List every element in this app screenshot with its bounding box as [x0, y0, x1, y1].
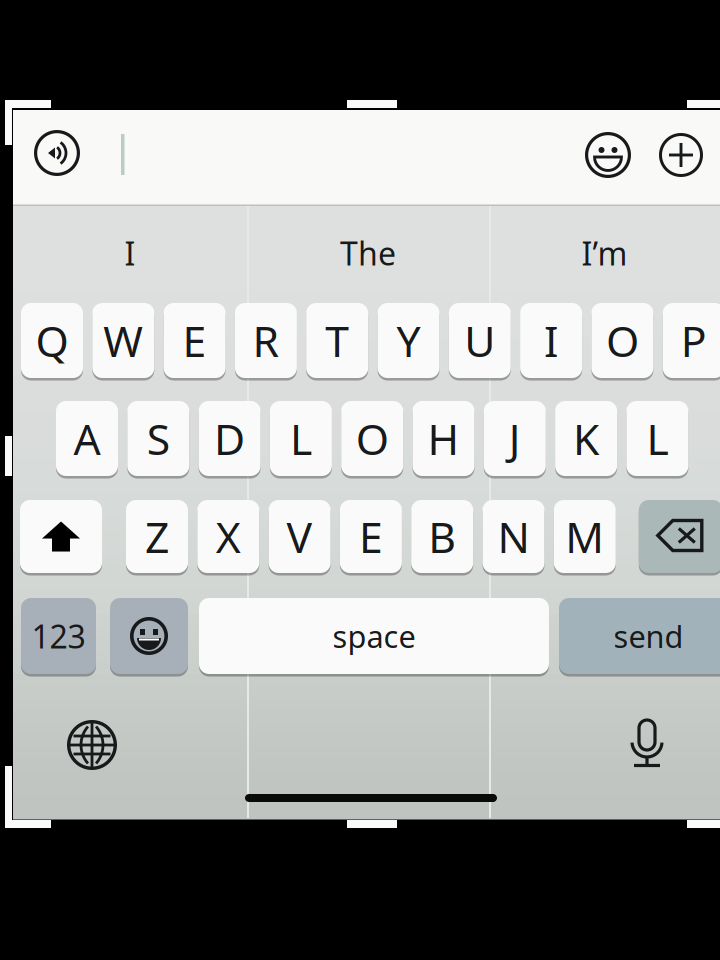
button[interactable]: 123	[21, 598, 96, 674]
staticText: K	[573, 410, 599, 467]
staticText: A	[73, 410, 100, 467]
staticText: D	[214, 410, 245, 467]
staticText: W	[103, 312, 143, 369]
button[interactable]: The	[247, 208, 489, 298]
staticText: E	[359, 508, 383, 565]
button[interactable]: T	[306, 303, 368, 378]
button[interactable]: J	[484, 401, 546, 476]
button[interactable]: Delete	[639, 500, 720, 573]
staticText: I	[124, 232, 135, 274]
staticText: I’m	[581, 232, 627, 274]
button[interactable]: Z	[126, 500, 188, 573]
button[interactable]: E	[340, 500, 402, 573]
button[interactable]: V	[269, 500, 331, 573]
button[interactable]: Add attachment	[659, 133, 703, 177]
button[interactable]: Dictate	[628, 716, 666, 770]
staticText: Y	[396, 312, 420, 369]
staticText: B	[428, 508, 456, 565]
button[interactable]: I’m	[489, 208, 720, 298]
staticText: J	[509, 410, 521, 467]
staticText: space	[332, 616, 415, 656]
staticText: M	[565, 508, 604, 565]
button[interactable]: X	[197, 500, 259, 573]
staticText: S	[147, 410, 170, 467]
button[interactable]: A	[56, 401, 118, 476]
staticText: O	[606, 312, 639, 369]
staticText: H	[427, 410, 459, 467]
staticText: E	[183, 312, 207, 369]
staticText: I	[544, 312, 558, 369]
button[interactable]: I	[13, 208, 247, 298]
button[interactable]: Shift	[20, 500, 102, 573]
staticText: N	[497, 508, 529, 565]
button[interactable]: space	[199, 598, 549, 674]
staticText: V	[287, 508, 313, 565]
staticText: Z	[145, 508, 169, 565]
button[interactable]: R	[235, 303, 297, 378]
button[interactable]: O	[341, 401, 403, 476]
staticText: Q	[35, 312, 68, 369]
button[interactable]: Emoji keyboard	[110, 598, 188, 674]
button[interactable]: N	[482, 500, 544, 573]
staticText: R	[252, 312, 279, 369]
button[interactable]: B	[411, 500, 473, 573]
button[interactable]: E	[164, 303, 226, 378]
button[interactable]: Q	[21, 303, 83, 378]
button[interactable]: I	[520, 303, 582, 378]
button[interactable]: M	[554, 500, 616, 573]
staticText: send	[613, 616, 683, 656]
staticText: The	[340, 232, 396, 274]
staticText: X	[216, 508, 241, 565]
button[interactable]: P	[663, 303, 720, 378]
button[interactable]: D	[199, 401, 261, 476]
button[interactable]: Audio message	[34, 130, 80, 176]
staticText: T	[325, 312, 349, 369]
button[interactable]: U	[449, 303, 511, 378]
button[interactable]: Emoji	[585, 132, 631, 178]
button[interactable]: H	[412, 401, 474, 476]
staticText: P	[681, 312, 707, 369]
button[interactable]: W	[92, 303, 154, 378]
staticText: O	[356, 410, 389, 467]
button[interactable]: S	[127, 401, 189, 476]
button[interactable]: send	[559, 598, 720, 674]
button[interactable]: L	[270, 401, 332, 476]
button[interactable]: K	[555, 401, 617, 476]
button[interactable]: Y	[377, 303, 439, 378]
button[interactable]: L	[626, 401, 688, 476]
staticText: L	[290, 410, 312, 467]
button[interactable]: O	[591, 303, 653, 378]
staticText: U	[464, 312, 495, 369]
button[interactable]: Switch keyboard	[67, 720, 117, 770]
staticText: L	[646, 410, 668, 467]
staticText: 123	[31, 615, 85, 657]
